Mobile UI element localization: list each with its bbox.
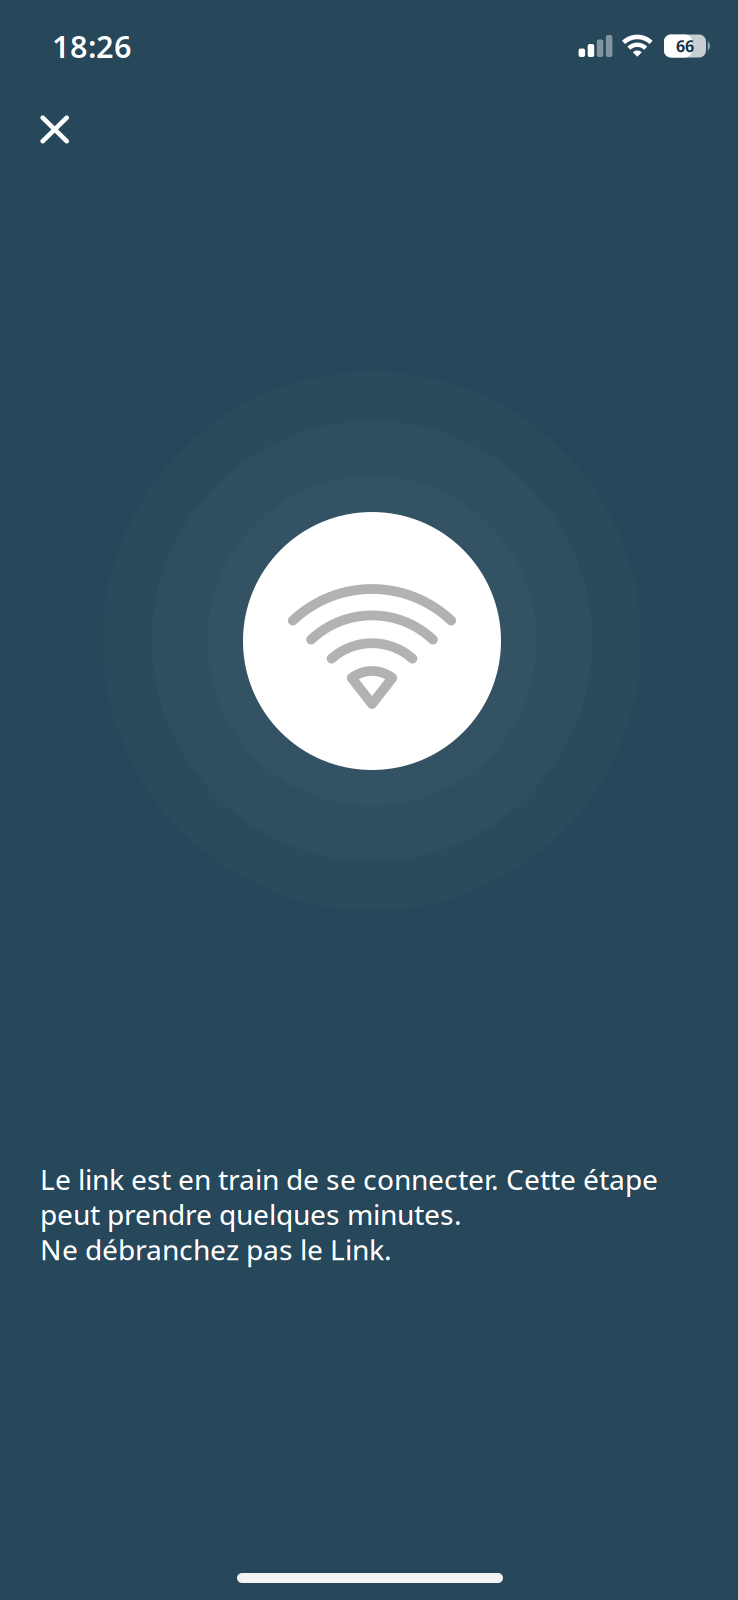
- staticText: 66: [676, 35, 694, 57]
- button[interactable]: Fermer: [25, 100, 85, 159]
- staticText: 18:26: [52, 26, 132, 66]
- staticText: Le link est en train de se connecter. Ce…: [40, 1160, 658, 1268]
